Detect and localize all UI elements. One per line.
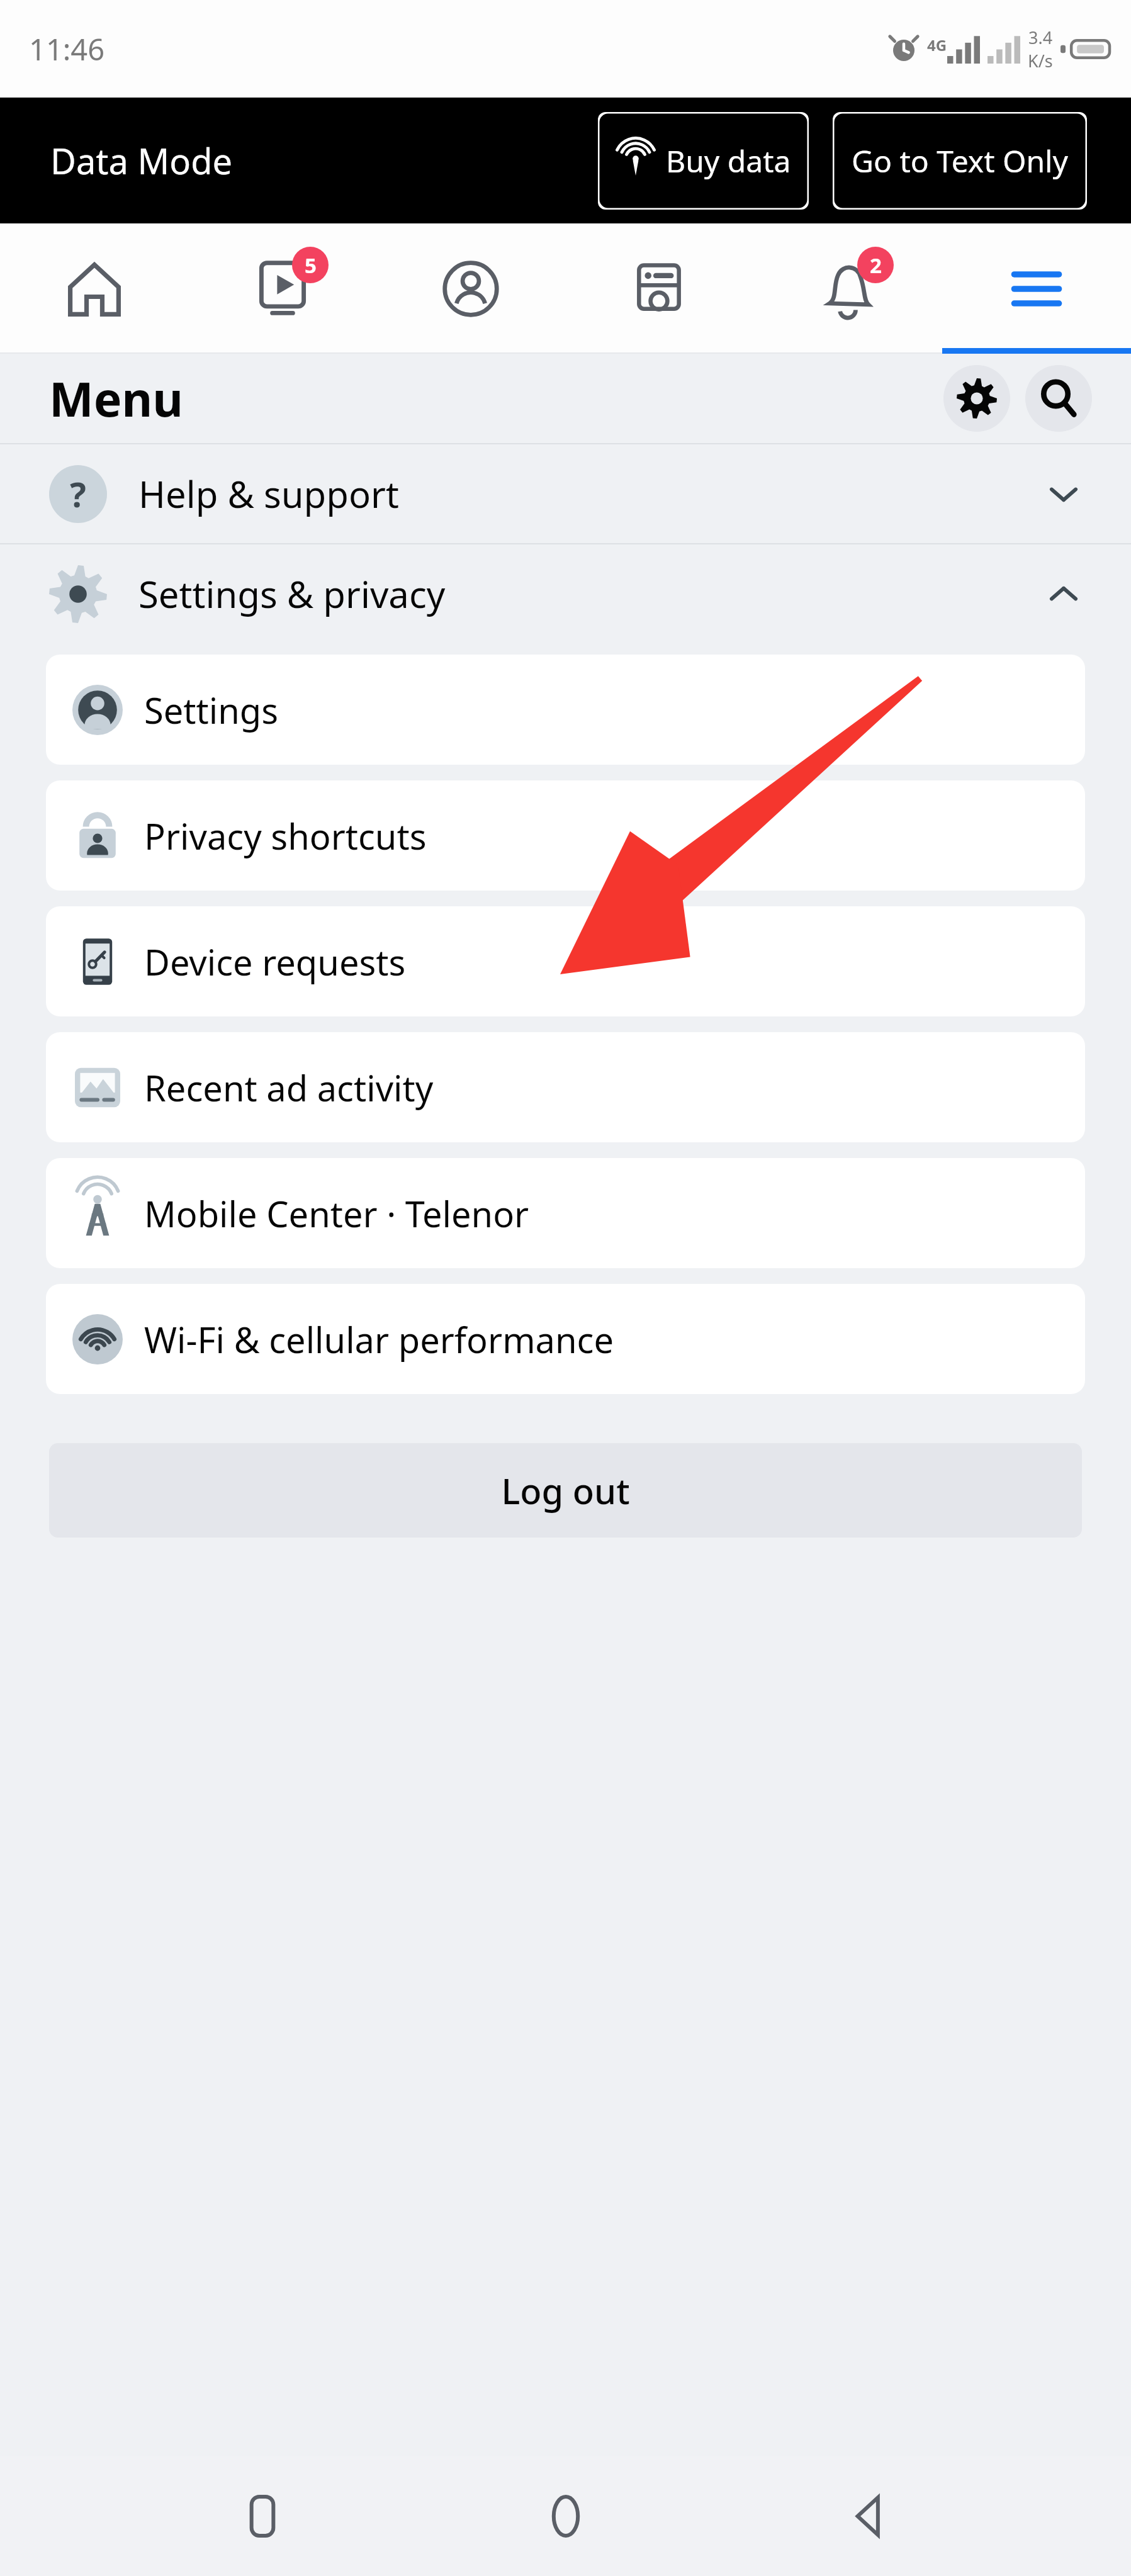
staticText: Mobile Center · Telenor	[144, 1190, 529, 1237]
staticText: Wi-Fi & cellular performance	[144, 1315, 614, 1363]
button[interactable]: Video	[188, 223, 376, 354]
button[interactable]: Notifications	[753, 223, 942, 354]
staticText: 3.4	[1028, 26, 1053, 49]
button[interactable]: Home	[525, 2475, 607, 2557]
staticText: Settings & privacy	[138, 569, 1045, 619]
staticText: Help & support	[138, 469, 1045, 519]
button[interactable]: Marketplace	[565, 223, 753, 354]
staticText: 4G	[927, 35, 947, 55]
button[interactable]: Back	[828, 2475, 909, 2557]
button[interactable]: Buy data	[598, 112, 809, 210]
staticText: Privacy shortcuts	[144, 812, 427, 860]
button[interactable]: Recent apps	[222, 2475, 303, 2557]
staticText: Device requests	[144, 938, 406, 986]
button[interactable]: Log out	[49, 1443, 1082, 1538]
button[interactable]: Settings	[943, 365, 1010, 432]
button[interactable]: ?	[0, 444, 1131, 543]
staticText: Settings	[144, 686, 279, 734]
staticText: Go to Text Only	[852, 140, 1068, 181]
button[interactable]: Wi-Fi & cellular performance	[46, 1284, 1085, 1394]
button[interactable]: Search	[1025, 365, 1092, 432]
staticText: Log out	[501, 1466, 630, 1514]
staticText: ?	[70, 471, 86, 517]
staticText: 2	[870, 251, 882, 279]
button[interactable]: Mobile Center · Telenor	[46, 1158, 1085, 1268]
button[interactable]: Recent ad activity	[46, 1032, 1085, 1142]
staticText: K/s	[1028, 49, 1053, 72]
button[interactable]: Home	[0, 223, 188, 354]
button[interactable]: Settings	[46, 655, 1085, 765]
staticText: Recent ad activity	[144, 1064, 434, 1111]
staticText: Data Mode	[50, 137, 233, 184]
staticText: 5	[305, 251, 317, 279]
button[interactable]: Device requests	[46, 906, 1085, 1016]
staticText: Menu	[49, 366, 184, 430]
button[interactable]: Go to Text Only	[833, 112, 1087, 210]
button[interactable]: Settings & privacy	[0, 544, 1131, 643]
button[interactable]: Profile	[376, 223, 565, 354]
button[interactable]: Menu	[942, 223, 1131, 354]
staticText: 11:46	[29, 29, 105, 69]
button[interactable]: Privacy shortcuts	[46, 780, 1085, 891]
staticText: Buy data	[666, 140, 791, 181]
